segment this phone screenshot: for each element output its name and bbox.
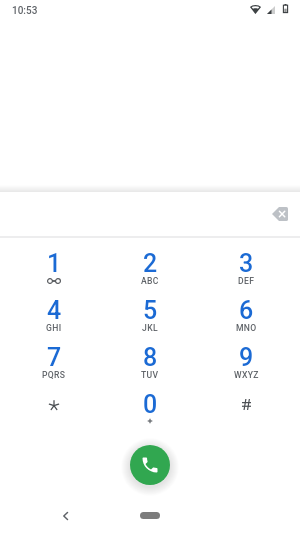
staticText: 9: [239, 343, 254, 372]
staticText: DEF: [238, 276, 255, 286]
staticText: TUV: [141, 370, 159, 380]
button[interactable]: Home: [140, 512, 160, 519]
staticText: 6: [239, 296, 254, 325]
button[interactable]: 1: [6, 238, 102, 285]
staticText: GHI: [46, 323, 62, 333]
button[interactable]: 2: [102, 238, 198, 285]
staticText: 4: [47, 296, 62, 325]
staticText: WXYZ: [234, 370, 259, 380]
staticText: MNO: [236, 323, 257, 333]
button[interactable]: 7: [6, 332, 102, 379]
button[interactable]: Backspace: [265, 199, 295, 229]
button[interactable]: 3: [198, 238, 294, 285]
staticText: 10:53: [12, 5, 38, 17]
staticText: 8: [143, 343, 158, 372]
staticText: 2: [143, 249, 158, 278]
staticText: 3: [239, 249, 254, 278]
button[interactable]: 9: [198, 332, 294, 379]
staticText: JKL: [142, 323, 158, 333]
button[interactable]: 8: [102, 332, 198, 379]
button[interactable]: [198, 379, 294, 426]
button[interactable]: 0: [102, 379, 198, 426]
button[interactable]: Call: [130, 445, 170, 485]
button[interactable]: 6: [198, 285, 294, 332]
staticText: 7: [47, 343, 62, 372]
staticText: 5: [143, 296, 158, 325]
staticText: 0: [143, 390, 158, 419]
staticText: 1: [47, 249, 62, 278]
staticText: PQRS: [42, 370, 66, 380]
button[interactable]: 5: [102, 285, 198, 332]
staticText: ABC: [141, 276, 159, 286]
button[interactable]: [6, 379, 102, 426]
button[interactable]: 4: [6, 285, 102, 332]
button[interactable]: Back: [53, 504, 77, 528]
